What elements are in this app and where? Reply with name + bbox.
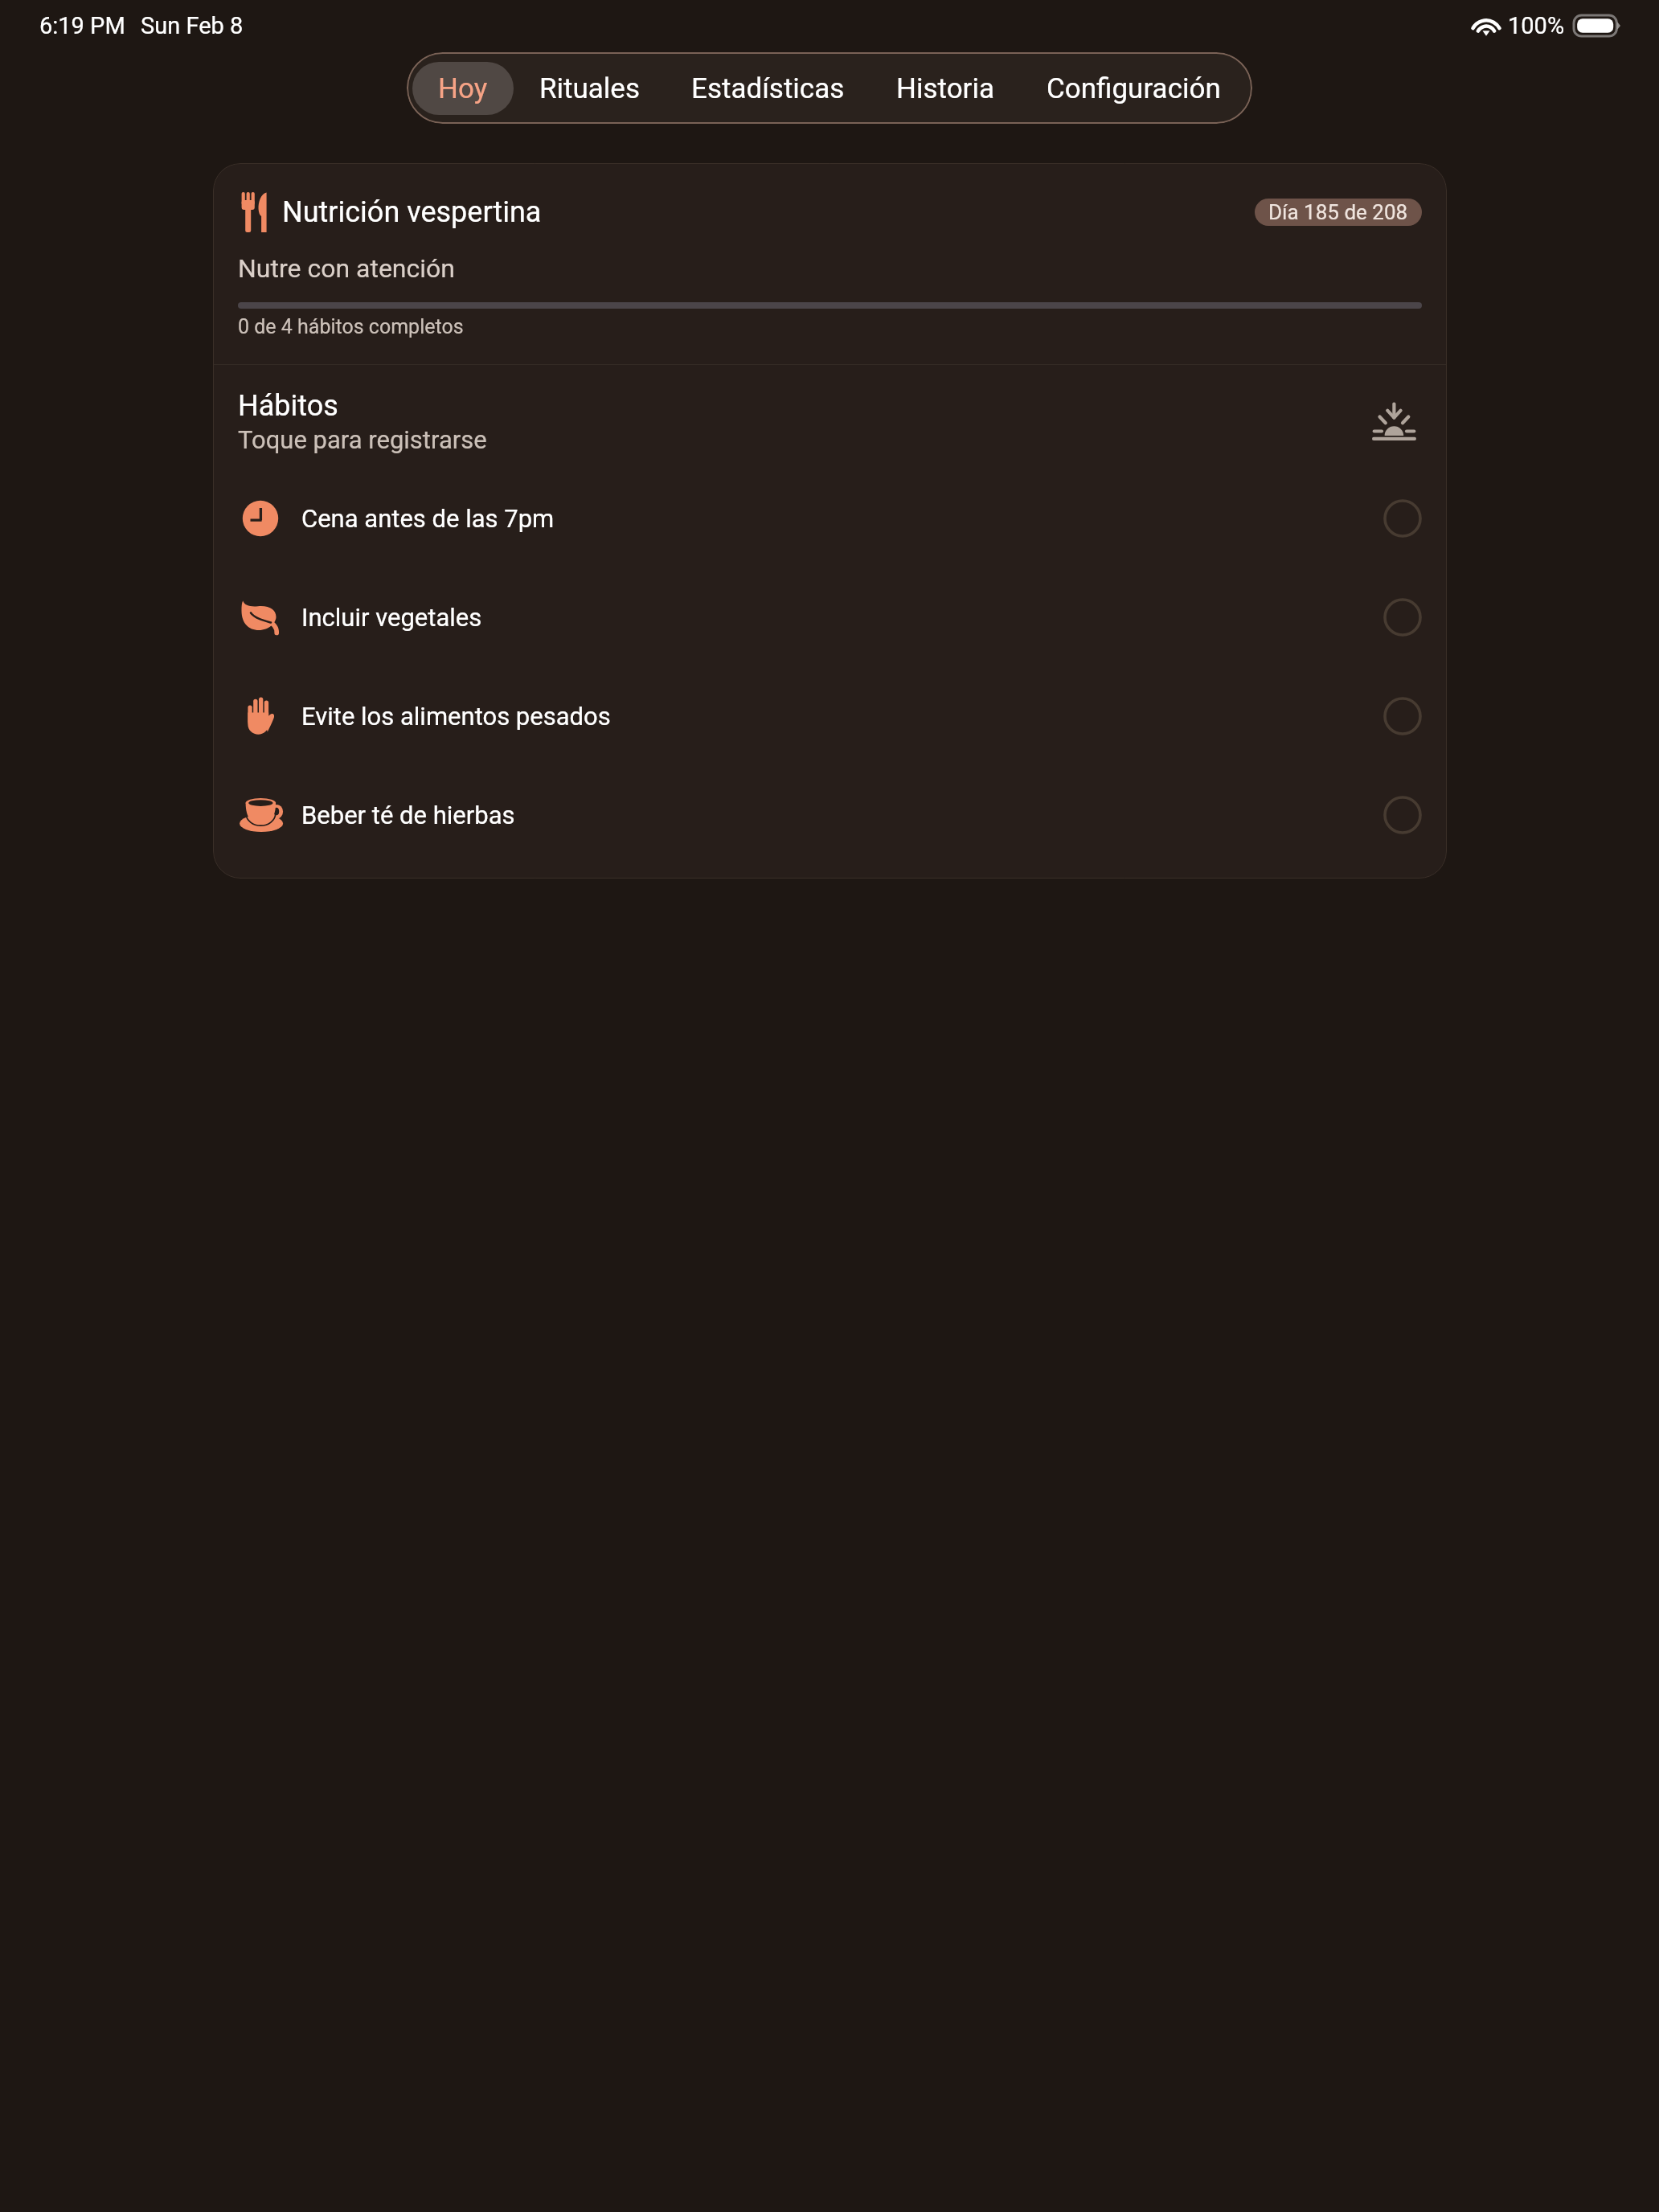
staticText: Cena antes de las 7pm: [301, 504, 555, 533]
staticText: Evite los alimentos pesados: [301, 702, 611, 731]
staticText: Incluir vegetales: [301, 603, 482, 632]
button[interactable]: Evite los alimentos pesados: [213, 666, 1447, 765]
staticText: Beber té de hierbas: [301, 801, 515, 829]
staticText: Sun Feb 8: [141, 12, 244, 39]
staticText: Hoy: [438, 72, 488, 105]
staticText: 6:19 PM: [39, 12, 125, 39]
button[interactable]: Estadísticas: [666, 62, 870, 115]
button[interactable]: Cena antes de las 7pm: [213, 469, 1447, 567]
staticText: Hábitos: [238, 389, 338, 423]
button[interactable]: Hoy: [412, 62, 514, 115]
staticText: Nutre con atención: [238, 253, 455, 284]
staticText: Día 185 de 208: [1268, 200, 1408, 224]
button[interactable]: Beber té de hierbas: [213, 765, 1447, 864]
button[interactable]: Incluir vegetales: [213, 567, 1447, 666]
button[interactable]: Configuración: [1021, 62, 1247, 115]
staticText: Configuración: [1047, 72, 1221, 105]
staticText: 0 de 4 hábitos completos: [238, 315, 464, 338]
staticText: Estadísticas: [691, 72, 845, 105]
other: Evening ritual: [1372, 403, 1422, 440]
staticText: Rituales: [539, 72, 640, 105]
button[interactable]: Rituales: [514, 62, 666, 115]
staticText: 100%: [1508, 12, 1565, 39]
staticText: Historia: [896, 72, 995, 105]
staticText: Nutrición vespertina: [282, 195, 542, 229]
staticText: Toque para registrarse: [238, 425, 487, 454]
button[interactable]: Historia: [870, 62, 1021, 115]
